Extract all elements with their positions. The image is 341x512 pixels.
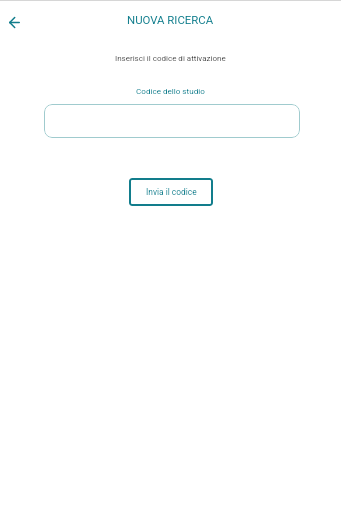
button[interactable]: Invia il codice bbox=[129, 178, 213, 206]
button[interactable]: Back bbox=[2, 10, 26, 34]
staticText: Inserisci il codice di attivazione bbox=[115, 54, 226, 63]
staticText: NUOVA RICERCA bbox=[127, 13, 214, 26]
staticText: Codice dello studio bbox=[136, 86, 205, 95]
staticText: Invia il codice bbox=[146, 187, 197, 197]
button[interactable] bbox=[44, 104, 300, 138]
